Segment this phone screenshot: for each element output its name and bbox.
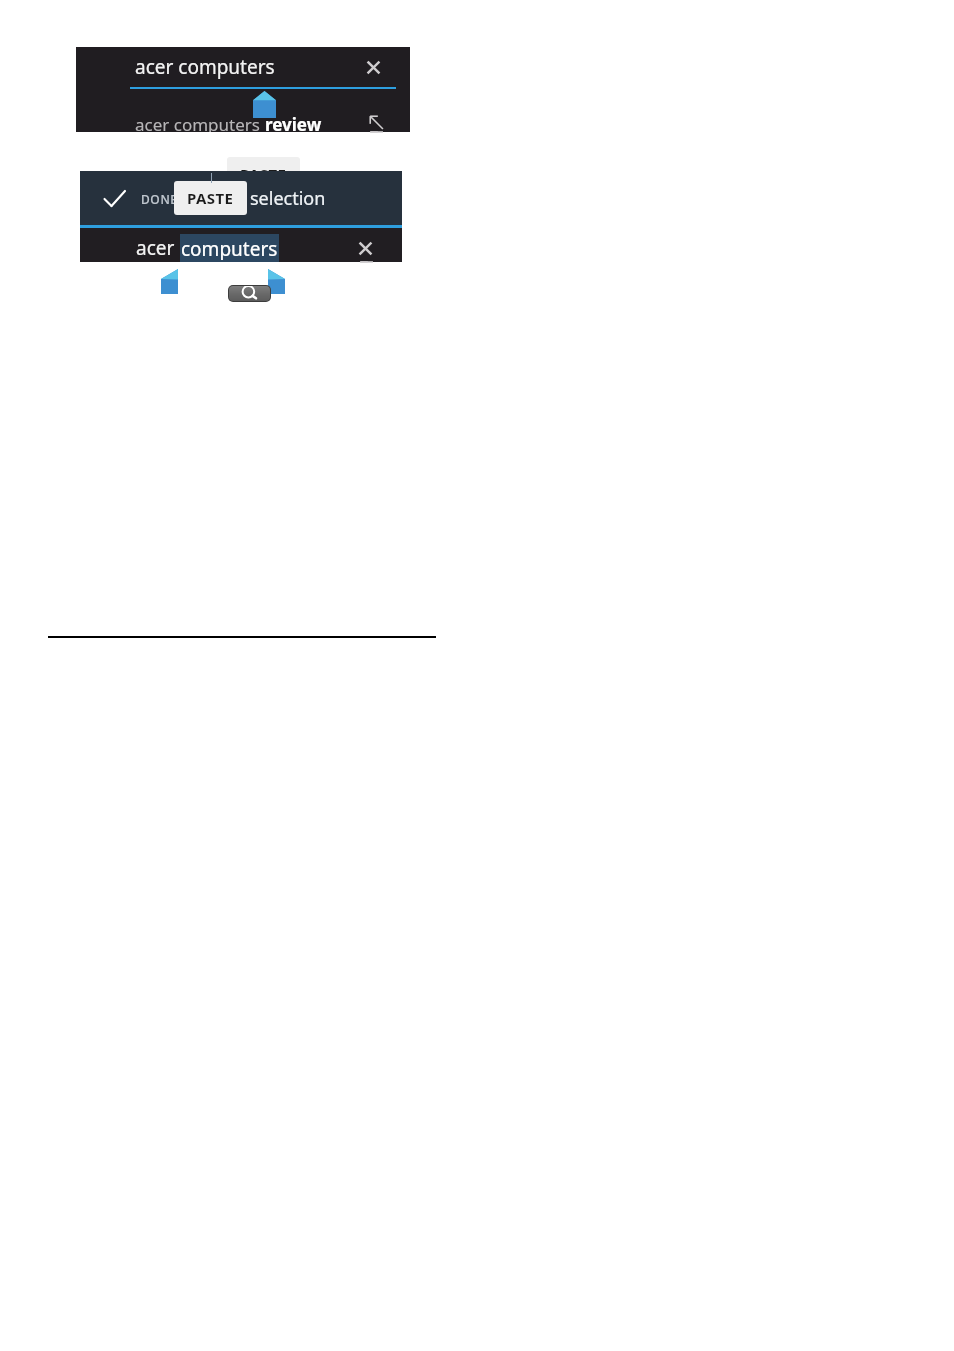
staticText: acer — [136, 235, 180, 261]
button[interactable]: acer computers — [76, 47, 410, 87]
button[interactable]: Clear query — [360, 54, 386, 80]
staticText: acer computers — [135, 54, 275, 80]
staticText: review — [265, 113, 322, 132]
staticText: selection — [250, 186, 326, 211]
staticText: computers — [181, 236, 278, 260]
staticText: PASTE — [187, 188, 234, 208]
button[interactable]: Search — [229, 286, 270, 301]
button[interactable]: PASTE — [227, 157, 300, 191]
staticText: acer computers — [135, 113, 265, 132]
button[interactable]: acer — [80, 234, 402, 262]
button[interactable]: acer computers — [76, 113, 410, 132]
staticText: PASTE — [240, 164, 287, 184]
staticText: DONE — [141, 191, 178, 207]
button[interactable]: PASTE — [174, 181, 247, 215]
button[interactable]: Clear query — [352, 235, 378, 261]
button[interactable]: DONE — [98, 180, 182, 217]
